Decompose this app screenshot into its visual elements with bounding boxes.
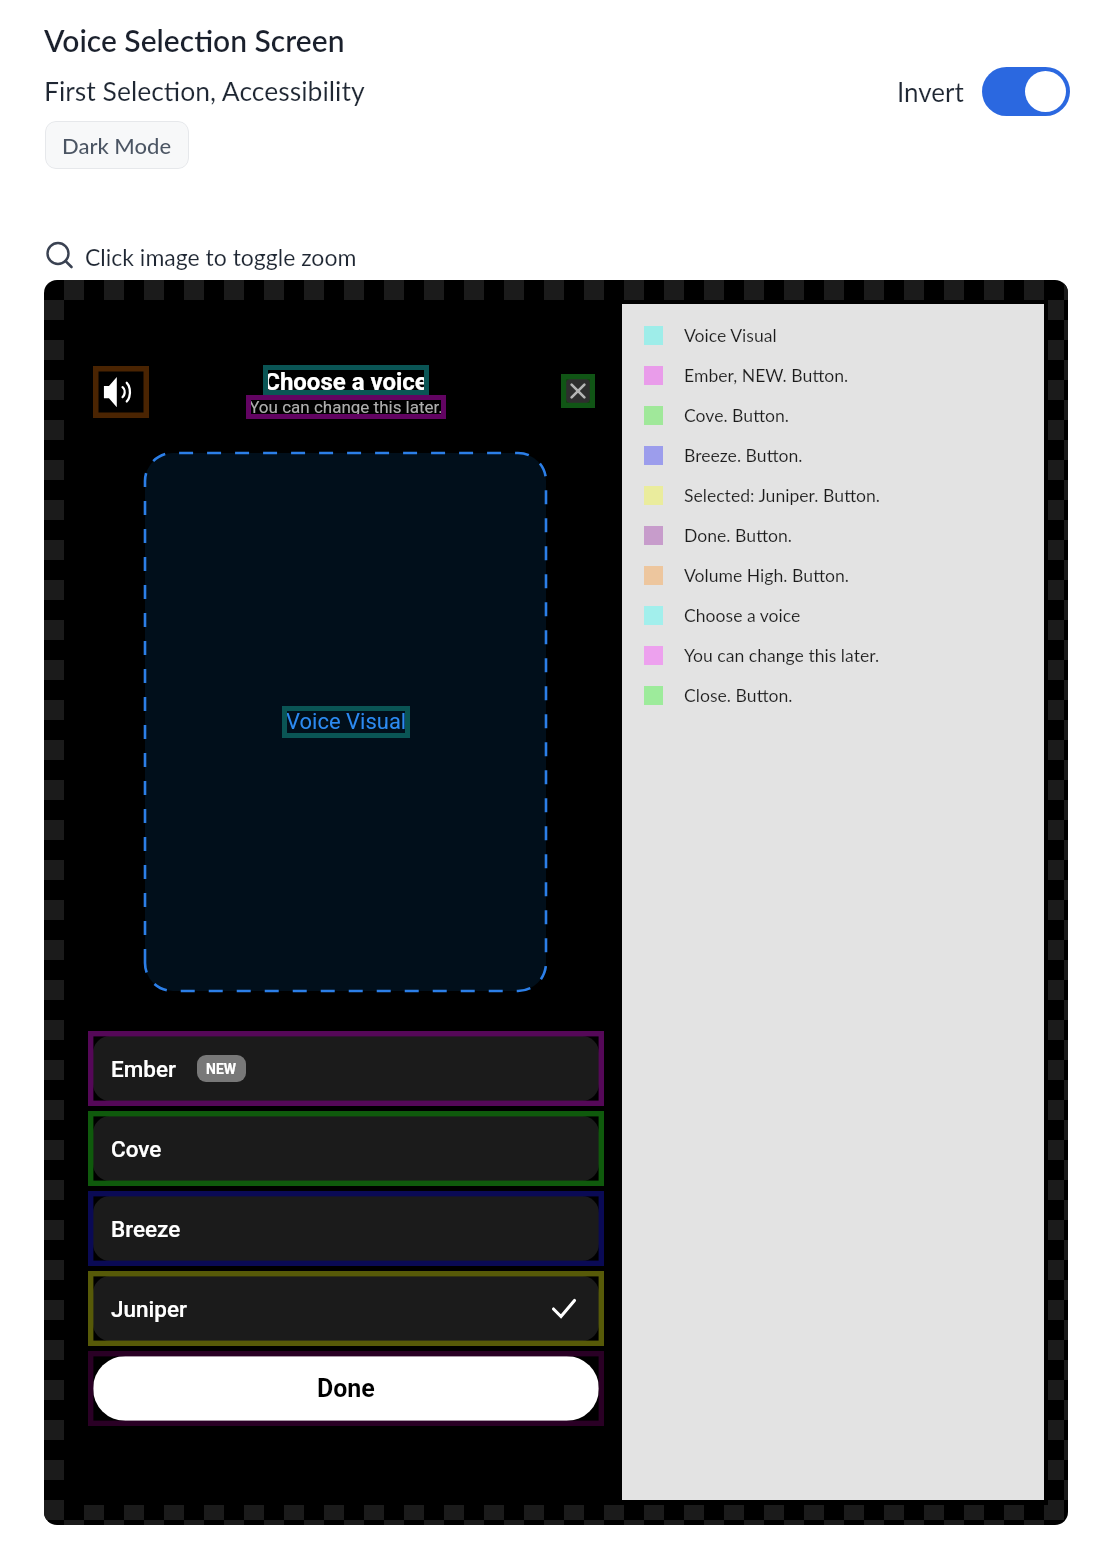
button[interactable]: Done bbox=[93, 1356, 599, 1421]
staticText: Close. Button. bbox=[684, 685, 793, 706]
button[interactable]: Volume High bbox=[93, 366, 149, 418]
staticText: Done. Button. bbox=[684, 525, 792, 546]
staticText: Done bbox=[317, 1374, 375, 1403]
button[interactable]: Breeze bbox=[93, 1196, 599, 1261]
staticText: You can change this later. bbox=[684, 645, 880, 666]
staticText: Breeze bbox=[111, 1216, 181, 1242]
staticText: NEW bbox=[206, 1061, 237, 1077]
staticText: Invert bbox=[897, 76, 964, 107]
staticText: Voice Visual bbox=[286, 709, 407, 735]
staticText: First Selection, Accessibility bbox=[44, 75, 365, 107]
staticText: Juniper bbox=[111, 1296, 187, 1322]
staticText: Ember, NEW. Button. bbox=[684, 365, 849, 386]
button[interactable]: Click image to toggle zoom bbox=[45, 241, 357, 273]
staticText: Cove bbox=[111, 1136, 162, 1162]
button[interactable]: Close bbox=[561, 374, 595, 408]
staticText: Dark Mode bbox=[62, 132, 172, 158]
staticText: Selected: Juniper. Button. bbox=[684, 485, 880, 506]
staticText: Ember bbox=[111, 1056, 176, 1082]
button[interactable]: Ember bbox=[93, 1036, 599, 1101]
staticText: Volume High. Button. bbox=[684, 565, 849, 586]
staticText: Choose a voice bbox=[264, 368, 428, 396]
staticText: Choose a voice bbox=[684, 605, 801, 626]
button[interactable]: Cove bbox=[93, 1116, 599, 1181]
button[interactable]: Invert colours toggle bbox=[982, 67, 1070, 116]
staticText: You can change this later. bbox=[249, 397, 443, 417]
staticText: Voice Selection Screen bbox=[44, 22, 345, 58]
button[interactable]: Dark Mode bbox=[45, 121, 189, 169]
staticText: Voice Visual bbox=[684, 325, 777, 346]
staticText: Click image to toggle zoom bbox=[85, 243, 357, 271]
staticText: Cove. Button. bbox=[684, 405, 789, 426]
button[interactable]: Juniper bbox=[93, 1276, 599, 1341]
staticText: Breeze. Button. bbox=[684, 445, 803, 466]
